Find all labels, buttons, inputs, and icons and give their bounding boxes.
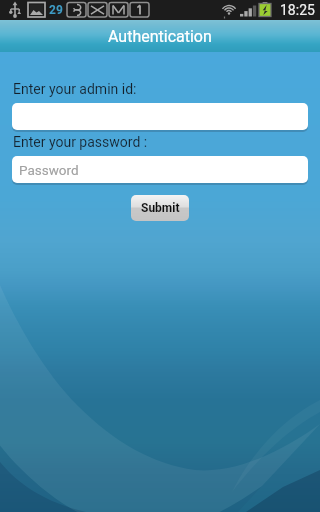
staticText: 29: [49, 3, 63, 17]
staticText: 18:25: [280, 2, 315, 18]
staticText: Enter your admin id:: [13, 81, 137, 97]
staticText: Enter your password :: [13, 134, 148, 150]
button[interactable]: Submit: [131, 195, 189, 221]
button[interactable]: Password: [12, 156, 308, 183]
staticText: Password: [19, 162, 79, 178]
button[interactable]: [12, 103, 308, 130]
staticText: Submit: [141, 201, 180, 215]
staticText: Authentication: [108, 27, 212, 46]
